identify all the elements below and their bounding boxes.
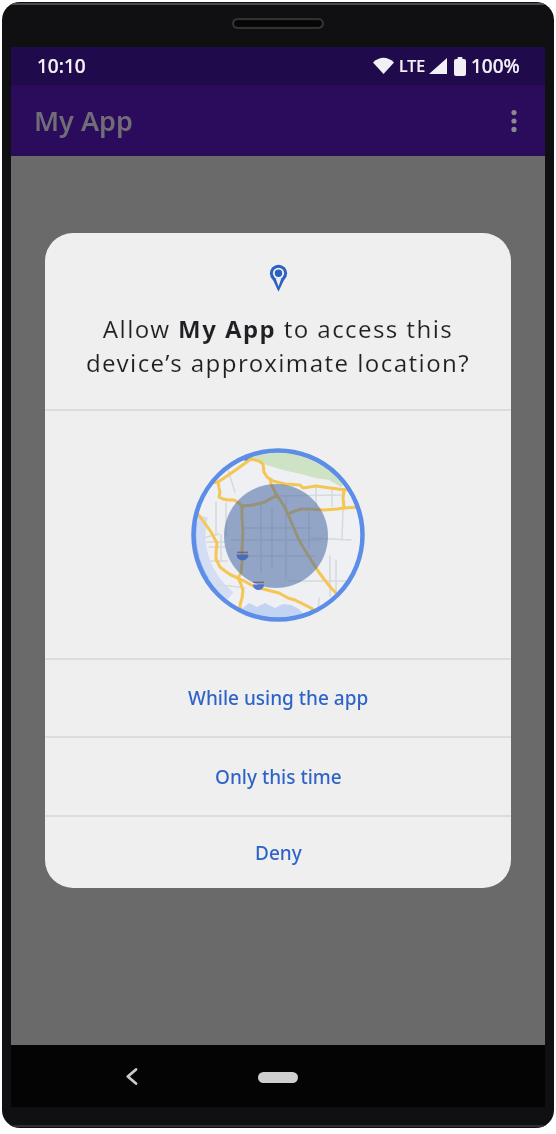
- button[interactable]: Only this time: [45, 738, 511, 815]
- staticText: While using the app: [188, 685, 369, 711]
- staticText: 10:10: [37, 53, 86, 79]
- button[interactable]: While using the app: [45, 660, 511, 736]
- staticText: Deny: [255, 840, 302, 866]
- staticText: Allow My App to access this device’s app…: [45, 312, 511, 380]
- staticText: LTE: [399, 55, 426, 77]
- staticText: 100%: [471, 53, 520, 79]
- staticText: My App: [34, 102, 133, 139]
- button[interactable]: [117, 1062, 145, 1090]
- button[interactable]: Deny: [45, 817, 511, 888]
- staticText: Only this time: [215, 764, 342, 790]
- button[interactable]: [258, 1072, 298, 1083]
- button[interactable]: [497, 104, 531, 138]
